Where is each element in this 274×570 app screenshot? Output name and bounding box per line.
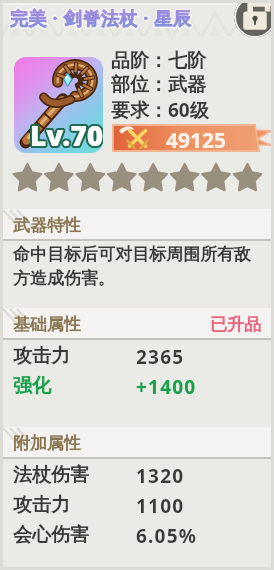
button[interactable]: 法杖伤害 — [0, 459, 274, 489]
staticText: Lv.70 — [31, 117, 103, 153]
staticText: 完美 · 剑脊法杖 · 星辰 — [9, 6, 191, 31]
staticText: 1320 — [136, 463, 185, 489]
staticText: 完美 · 剑脊法杖 · 星辰 — [11, 7, 193, 32]
staticText: Lv.70 — [31, 116, 103, 153]
staticText: 要求：60级 — [111, 97, 209, 123]
staticText: 完美 · 剑脊法杖 · 星辰 — [11, 5, 193, 30]
staticText: 完美 · 剑脊法杖 · 星辰 — [10, 6, 192, 31]
staticText: 附加属性 — [13, 433, 81, 454]
staticText: Lv.70 — [31, 114, 103, 152]
button[interactable]: 会心伤害 — [0, 519, 274, 549]
staticText: Lv.70 — [32, 116, 103, 153]
staticText: 命中目标后可对目标周围所有敌 — [13, 244, 251, 265]
staticText: +1400 — [136, 374, 197, 400]
button[interactable]: 强化 — [0, 370, 274, 400]
staticText: 会心伤害 — [13, 523, 89, 547]
staticText: Lv.70 — [30, 117, 103, 153]
button[interactable]: Lock item — [234, 0, 274, 37]
staticText: 攻击力 — [13, 493, 70, 517]
staticText: Lv.70 — [29, 114, 103, 152]
staticText: 完美 · 剑脊法杖 · 星辰 — [9, 7, 191, 32]
staticText: 攻击力 — [13, 344, 70, 368]
staticText: 49125 — [166, 126, 227, 155]
staticText: 武器特性 — [13, 215, 81, 236]
button[interactable]: Weapon icon — [14, 57, 103, 153]
staticText: Lv.70 — [29, 116, 103, 153]
staticText: Lv.70 — [28, 117, 102, 153]
staticText: Lv.70 — [30, 118, 103, 153]
staticText: 强化 — [13, 374, 51, 398]
staticText: 法杖伤害 — [13, 463, 89, 487]
staticText: 已升品 — [210, 314, 261, 335]
staticText: 完美 · 剑脊法杖 · 星辰 — [11, 6, 193, 31]
button[interactable]: 攻击力 — [0, 340, 274, 370]
staticText: Lv.70 — [30, 116, 103, 153]
staticText: Lv.70 — [28, 115, 102, 153]
staticText: 2365 — [136, 344, 185, 370]
staticText: 完美 · 剑脊法杖 · 星辰 — [10, 7, 192, 32]
staticText: 完美 · 剑脊法杖 · 星辰 — [10, 5, 192, 30]
staticText: Lv.70 — [29, 118, 103, 153]
staticText: 基础属性 — [13, 314, 81, 335]
staticText: Lv.70 — [29, 117, 103, 153]
button[interactable]: 附加属性 — [0, 427, 274, 459]
staticText: 完美 · 剑脊法杖 · 星辰 — [9, 5, 191, 30]
button[interactable]: 武器特性 — [0, 209, 274, 241]
button[interactable]: 攻击力 — [0, 489, 274, 519]
staticText: Lv.70 — [31, 118, 103, 153]
staticText: 部位：武器 — [111, 73, 206, 97]
staticText: 方造成伤害。 — [13, 268, 115, 289]
staticText: Lv.70 — [32, 117, 103, 153]
staticText: 品阶：七阶 — [111, 49, 206, 73]
button[interactable]: 基础属性 — [0, 308, 274, 340]
staticText: Lv.70 — [32, 115, 103, 153]
staticText: Lv.70 — [30, 115, 103, 153]
staticText: Lv.70 — [31, 115, 103, 153]
staticText: Lv.70 — [30, 114, 103, 152]
staticText: 6.05% — [136, 523, 198, 549]
staticText: Lv.70 — [29, 115, 103, 153]
staticText: Lv.70 — [28, 116, 102, 153]
staticText: 1100 — [136, 493, 185, 519]
